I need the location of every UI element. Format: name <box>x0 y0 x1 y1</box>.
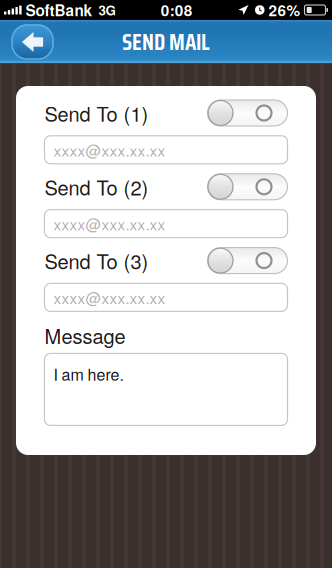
staticText: 0:08 <box>161 0 193 21</box>
button[interactable]: Back <box>10 22 55 62</box>
staticText: Send To (3) <box>44 246 148 275</box>
button[interactable]: Send To toggle <box>207 174 287 200</box>
button[interactable]: xxxx@xxx.xx.xx <box>44 136 287 164</box>
button[interactable]: I am here. <box>44 353 287 425</box>
staticText: xxxx@xxx.xx.xx <box>53 213 165 235</box>
staticText: I am here. <box>53 362 123 385</box>
staticText: xxxx@xxx.xx.xx <box>53 139 165 161</box>
staticText: xxxx@xxx.xx.xx <box>53 286 165 308</box>
button[interactable]: xxxx@xxx.xx.xx <box>44 283 287 311</box>
staticText: 26% <box>268 0 300 21</box>
staticText: SEND MAIL <box>122 24 210 60</box>
button[interactable]: Send To toggle <box>207 248 287 274</box>
staticText: Message <box>44 321 125 350</box>
staticText: 3G <box>99 0 116 20</box>
button[interactable]: Send To toggle <box>207 100 287 126</box>
staticText: SoftBank <box>26 0 93 21</box>
button[interactable]: xxxx@xxx.xx.xx <box>44 210 287 238</box>
staticText: Send To (2) <box>44 172 148 201</box>
staticText: Send To (1) <box>44 99 148 127</box>
